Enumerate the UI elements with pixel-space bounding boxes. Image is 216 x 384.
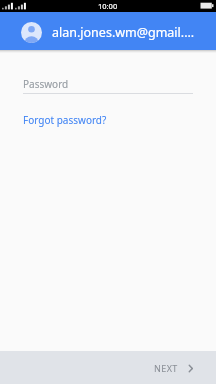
staticText: 10:00: [98, 1, 118, 11]
button[interactable]: Password: [0, 77, 216, 94]
staticText: Password: [23, 77, 69, 91]
button[interactable]: Account avatar: [0, 12, 216, 50]
staticText: NEXT: [154, 362, 178, 374]
other: Account avatar: [21, 22, 42, 43]
button[interactable]: NEXT: [138, 355, 216, 381]
button[interactable]: Forgot password?: [23, 113, 107, 127]
staticText: alan.jones.wm@gmail....: [52, 24, 195, 41]
